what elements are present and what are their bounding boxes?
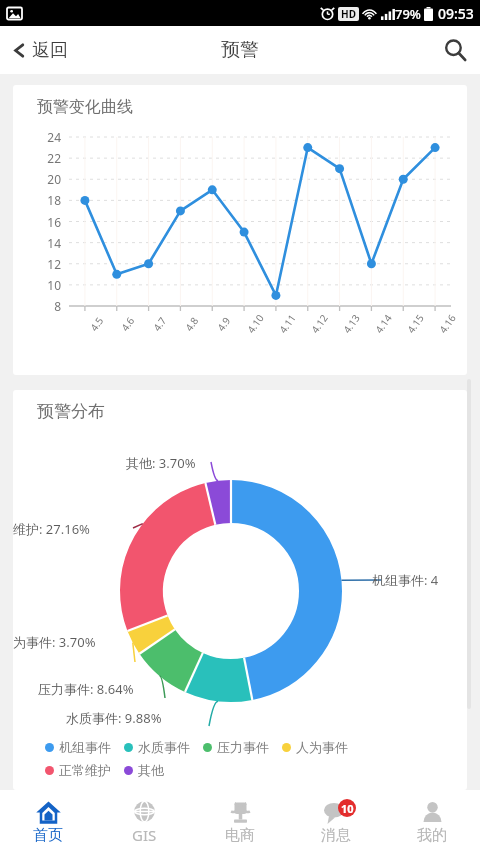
staticText: 09:53 — [438, 4, 474, 23]
button[interactable]: 其他 — [124, 762, 164, 778]
staticText: 4.7 — [150, 313, 170, 334]
staticText: 10 — [13, 277, 61, 293]
staticText: 16 — [13, 214, 61, 230]
staticText: 20 — [13, 171, 61, 187]
staticText: 压力事件: 8.64% — [38, 680, 134, 698]
button[interactable]: 水质事件 — [124, 739, 190, 755]
staticText: 其他 — [138, 762, 164, 778]
staticText: 正常维护 — [59, 762, 111, 778]
staticText: 预警分布 — [37, 401, 105, 422]
staticText: 机组事件: 4 — [372, 571, 439, 589]
staticText: 4.10 — [244, 311, 267, 336]
staticText: 首页 — [33, 826, 63, 845]
staticText: 4.6 — [118, 313, 138, 334]
staticText: 其他: 3.70% — [126, 454, 196, 472]
staticText: 18 — [13, 192, 61, 208]
button[interactable]: 我的 — [384, 790, 480, 853]
staticText: 预警变化曲线 — [37, 97, 133, 117]
button[interactable]: 首页 — [0, 790, 96, 853]
button[interactable]: 10 — [288, 790, 384, 853]
staticText: 预警 — [221, 38, 259, 62]
staticText: 4.8 — [182, 313, 202, 334]
staticText: 4.12 — [308, 311, 331, 336]
staticText: 返回 — [32, 39, 68, 62]
staticText: HD — [341, 7, 356, 21]
staticText: 4.11 — [276, 311, 299, 336]
staticText: 压力事件 — [217, 739, 269, 755]
staticText: 12 — [13, 256, 61, 272]
staticText: 4.5 — [87, 313, 107, 334]
button[interactable]: 人为事件 — [282, 739, 348, 755]
staticText: 4.15 — [404, 311, 427, 336]
staticText: 4.14 — [372, 311, 395, 336]
staticText: GIS — [132, 825, 157, 845]
button[interactable]: GIS — [96, 790, 192, 853]
staticText: 79% — [395, 5, 421, 23]
staticText: 8 — [13, 298, 61, 314]
button[interactable]: 电商 — [192, 790, 288, 853]
staticText: 10 — [341, 801, 354, 816]
button[interactable]: 压力事件 — [203, 739, 269, 755]
staticText: 机组事件 — [59, 739, 111, 755]
button[interactable]: 返回 — [0, 31, 82, 70]
staticText: 14 — [13, 235, 61, 251]
button[interactable]: Search — [430, 28, 480, 72]
staticText: 水质事件: 9.88% — [66, 709, 162, 727]
staticText: 22 — [13, 150, 61, 166]
staticText: 4.16 — [436, 311, 459, 336]
staticText: 人为事件 — [296, 739, 348, 755]
staticText: 消息 — [321, 826, 351, 845]
staticText: 我的 — [417, 826, 447, 845]
staticText: 为事件: 3.70% — [13, 633, 96, 651]
staticText: 4.13 — [340, 311, 363, 336]
staticText: 4.9 — [214, 313, 234, 334]
button[interactable]: 机组事件 — [45, 739, 111, 755]
staticText: 水质事件 — [138, 739, 190, 755]
staticText: 24 — [13, 129, 61, 145]
staticText: 维护: 27.16% — [13, 520, 90, 538]
button[interactable]: 正常维护 — [45, 762, 111, 778]
staticText: 电商 — [225, 826, 255, 845]
